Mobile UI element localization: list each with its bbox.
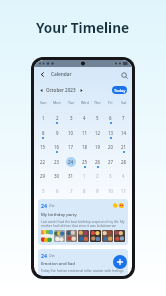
button[interactable]: Previous month bbox=[38, 87, 44, 93]
button[interactable]: 19 bbox=[91, 141, 104, 155]
staticText: 7 bbox=[122, 115, 125, 121]
staticText: 16 bbox=[54, 144, 60, 150]
staticText: 17 bbox=[68, 144, 74, 150]
button[interactable]: 8 bbox=[78, 185, 91, 199]
staticText: 9 bbox=[56, 130, 59, 136]
button[interactable]: Add entry bbox=[113, 255, 127, 269]
staticText: 25 bbox=[82, 159, 88, 165]
staticText: 24 bbox=[68, 159, 74, 165]
staticText: 11 bbox=[82, 130, 88, 136]
staticText: 5 bbox=[42, 188, 45, 194]
button[interactable]: 2 bbox=[91, 170, 104, 184]
button[interactable]: 24 bbox=[38, 249, 128, 276]
staticText: 22 bbox=[40, 159, 46, 165]
button[interactable]: 24 bbox=[64, 156, 78, 170]
button[interactable]: 12 bbox=[91, 127, 104, 141]
staticText: 4 bbox=[122, 173, 125, 179]
button[interactable]: 7 bbox=[117, 112, 130, 126]
staticText: 3 bbox=[109, 173, 112, 179]
button[interactable]: Search bbox=[119, 70, 129, 80]
staticText: 2 bbox=[56, 115, 59, 121]
staticText: 27 bbox=[108, 159, 114, 165]
staticText: Calendar bbox=[51, 71, 72, 78]
button[interactable]: 17 bbox=[64, 141, 78, 155]
staticText: Mon bbox=[53, 100, 61, 105]
staticText: Your Timeline bbox=[36, 18, 130, 37]
staticText: My birthday party bbox=[41, 212, 77, 218]
button[interactable]: Next month bbox=[78, 87, 84, 93]
staticText: Tue bbox=[68, 100, 75, 105]
staticText: 1 bbox=[42, 115, 45, 121]
staticText: 8 bbox=[42, 130, 45, 136]
staticText: 24 bbox=[41, 252, 47, 259]
button[interactable]: 10 bbox=[64, 127, 78, 141]
staticText: 10 bbox=[68, 130, 74, 136]
staticText: October 2023 bbox=[46, 87, 76, 93]
staticText: 1 bbox=[83, 173, 86, 179]
button[interactable]: Today bbox=[112, 86, 127, 94]
staticText: 3 bbox=[70, 115, 73, 121]
staticText: 20 bbox=[108, 144, 114, 150]
staticText: Last week I had the best birthday surpri… bbox=[41, 220, 125, 228]
button[interactable]: 15 bbox=[36, 141, 50, 155]
staticText: 28 bbox=[121, 159, 127, 165]
button[interactable]: 11 bbox=[78, 127, 91, 141]
staticText: 11 bbox=[121, 188, 127, 194]
staticText: 6 bbox=[56, 188, 59, 194]
staticText: 9 bbox=[96, 188, 99, 194]
button[interactable]: 11 bbox=[117, 185, 130, 199]
staticText: 23 bbox=[54, 159, 60, 165]
button[interactable]: 25 bbox=[78, 156, 91, 170]
button[interactable]: 21 bbox=[117, 141, 130, 155]
button[interactable]: 9 bbox=[50, 127, 64, 141]
staticText: 29 bbox=[40, 173, 46, 179]
staticText: 5 bbox=[96, 115, 99, 121]
button[interactable]: 3 bbox=[64, 112, 78, 126]
button[interactable]: 27 bbox=[104, 156, 117, 170]
button[interactable]: 4 bbox=[78, 112, 91, 126]
button[interactable]: 1 bbox=[78, 170, 91, 184]
button[interactable]: 26 bbox=[91, 156, 104, 170]
button[interactable]: 4 bbox=[117, 170, 130, 184]
button[interactable]: 5 bbox=[91, 112, 104, 126]
staticText: Sun bbox=[40, 100, 47, 105]
button[interactable]: 10 bbox=[104, 185, 117, 199]
button[interactable]: 13 bbox=[104, 127, 117, 141]
staticText: 2 bbox=[96, 173, 99, 179]
staticText: Fri bbox=[108, 100, 113, 105]
button[interactable]: 6 bbox=[104, 112, 117, 126]
button[interactable]: 9 bbox=[91, 185, 104, 199]
staticText: Oct bbox=[49, 253, 55, 258]
button[interactable]: Back bbox=[38, 70, 47, 79]
staticText: 31 bbox=[68, 173, 74, 179]
button[interactable]: 6 bbox=[50, 185, 64, 199]
button[interactable]: 23 bbox=[50, 156, 64, 170]
button[interactable]: 22 bbox=[36, 156, 50, 170]
button[interactable]: 29 bbox=[36, 170, 50, 184]
button[interactable]: 8 bbox=[36, 127, 50, 141]
button[interactable]: 24 bbox=[38, 199, 128, 245]
button[interactable]: 5 bbox=[36, 185, 50, 199]
button[interactable]: 3 bbox=[104, 170, 117, 184]
button[interactable]: 1 bbox=[36, 112, 50, 126]
button[interactable]: 18 bbox=[78, 141, 91, 155]
staticText: 26 bbox=[95, 159, 101, 165]
staticText: 6 bbox=[109, 115, 112, 121]
button[interactable]: 20 bbox=[104, 141, 117, 155]
button[interactable]: 7 bbox=[64, 185, 78, 199]
staticText: 19 bbox=[95, 144, 101, 150]
button[interactable]: 30 bbox=[50, 170, 64, 184]
button[interactable]: 2 bbox=[50, 112, 64, 126]
staticText: 7 bbox=[70, 188, 73, 194]
button[interactable]: 14 bbox=[117, 127, 130, 141]
staticText: 4 bbox=[83, 115, 86, 121]
staticText: Oct bbox=[49, 203, 55, 208]
staticText: Wed bbox=[81, 100, 89, 105]
button[interactable]: 28 bbox=[117, 156, 130, 170]
staticText: 30 bbox=[54, 173, 60, 179]
button[interactable]: 31 bbox=[64, 170, 78, 184]
button[interactable]: 16 bbox=[50, 141, 64, 155]
staticText: 18 bbox=[82, 144, 88, 150]
staticText: Thu bbox=[94, 100, 101, 105]
staticText: 8 bbox=[83, 188, 86, 194]
